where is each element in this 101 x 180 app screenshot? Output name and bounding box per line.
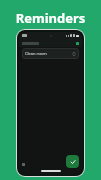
staticText: Reminders [0, 9, 101, 27]
button[interactable]: Clean room [22, 48, 79, 59]
staticText: Clean room [25, 51, 47, 56]
button[interactable]: Menu [22, 163, 25, 166]
button[interactable]: Add reminder [76, 42, 79, 45]
button[interactable]: Done [66, 155, 79, 168]
